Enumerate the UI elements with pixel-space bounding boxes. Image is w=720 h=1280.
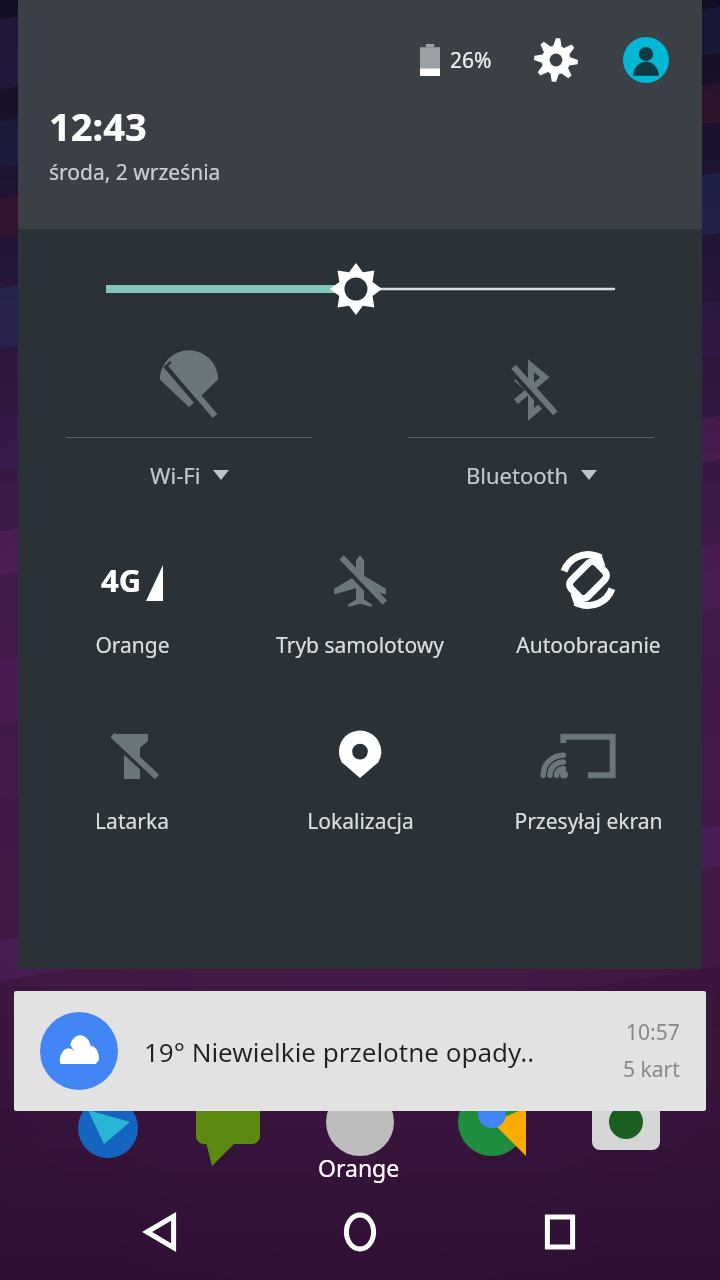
staticText: Orange [318, 1152, 400, 1183]
button[interactable]: 19° Niewielkie przelotne opady.. [14, 991, 706, 1111]
button[interactable]: Latarka [18, 717, 246, 847]
button[interactable]: Autoobracanie [474, 541, 702, 671]
button[interactable]: Brightness [18, 229, 702, 349]
staticText: 10:57 [626, 1018, 680, 1047]
staticText: 4G [101, 559, 142, 601]
button[interactable]: 4G [18, 541, 246, 671]
staticText: Orange [95, 631, 170, 660]
staticText: Autoobracanie [516, 631, 661, 660]
button[interactable]: Back [120, 1192, 200, 1272]
staticText: 26% [450, 46, 492, 75]
button[interactable]: Recent apps [520, 1192, 600, 1272]
staticText: 19° Niewielkie przelotne opady.. [144, 1034, 611, 1069]
button[interactable]: Tryb samolotowy [246, 541, 474, 671]
button[interactable]: Bluetooth [408, 349, 654, 509]
staticText: 12:43 [49, 100, 147, 152]
button[interactable]: User profile [622, 36, 670, 84]
staticText: Bluetooth [466, 460, 569, 490]
staticText: Latarka [95, 807, 169, 836]
button[interactable]: Home [320, 1192, 400, 1272]
button[interactable]: Settings [532, 36, 580, 84]
button[interactable]: Wi-Fi [66, 349, 312, 509]
staticText: Lokalizacja [307, 807, 414, 836]
staticText: Przesyłaj ekran [514, 807, 663, 836]
staticText: środa, 2 września [49, 158, 221, 187]
button[interactable]: Lokalizacja [246, 717, 474, 847]
staticText: Wi-Fi [150, 460, 201, 490]
staticText: 5 kart [623, 1055, 680, 1084]
staticText: Tryb samolotowy [276, 631, 444, 660]
button[interactable]: Przesyłaj ekran [474, 717, 702, 847]
